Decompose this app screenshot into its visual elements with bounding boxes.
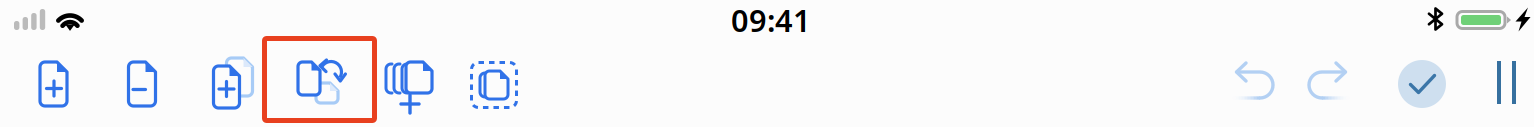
button[interactable]: Select pages xyxy=(0,0,1534,127)
button[interactable]: Undo xyxy=(0,0,1534,127)
button[interactable]: Redo xyxy=(0,0,1534,127)
button[interactable]: Add page xyxy=(0,0,1534,127)
staticText: 09:41 xyxy=(731,0,811,40)
button[interactable]: Insert page xyxy=(0,0,1534,127)
button[interactable]: Delete page xyxy=(0,0,1534,127)
button[interactable]: Insert pages xyxy=(0,0,1534,127)
button[interactable]: Done xyxy=(0,0,1534,127)
button[interactable]: Rotate page xyxy=(0,0,1534,127)
